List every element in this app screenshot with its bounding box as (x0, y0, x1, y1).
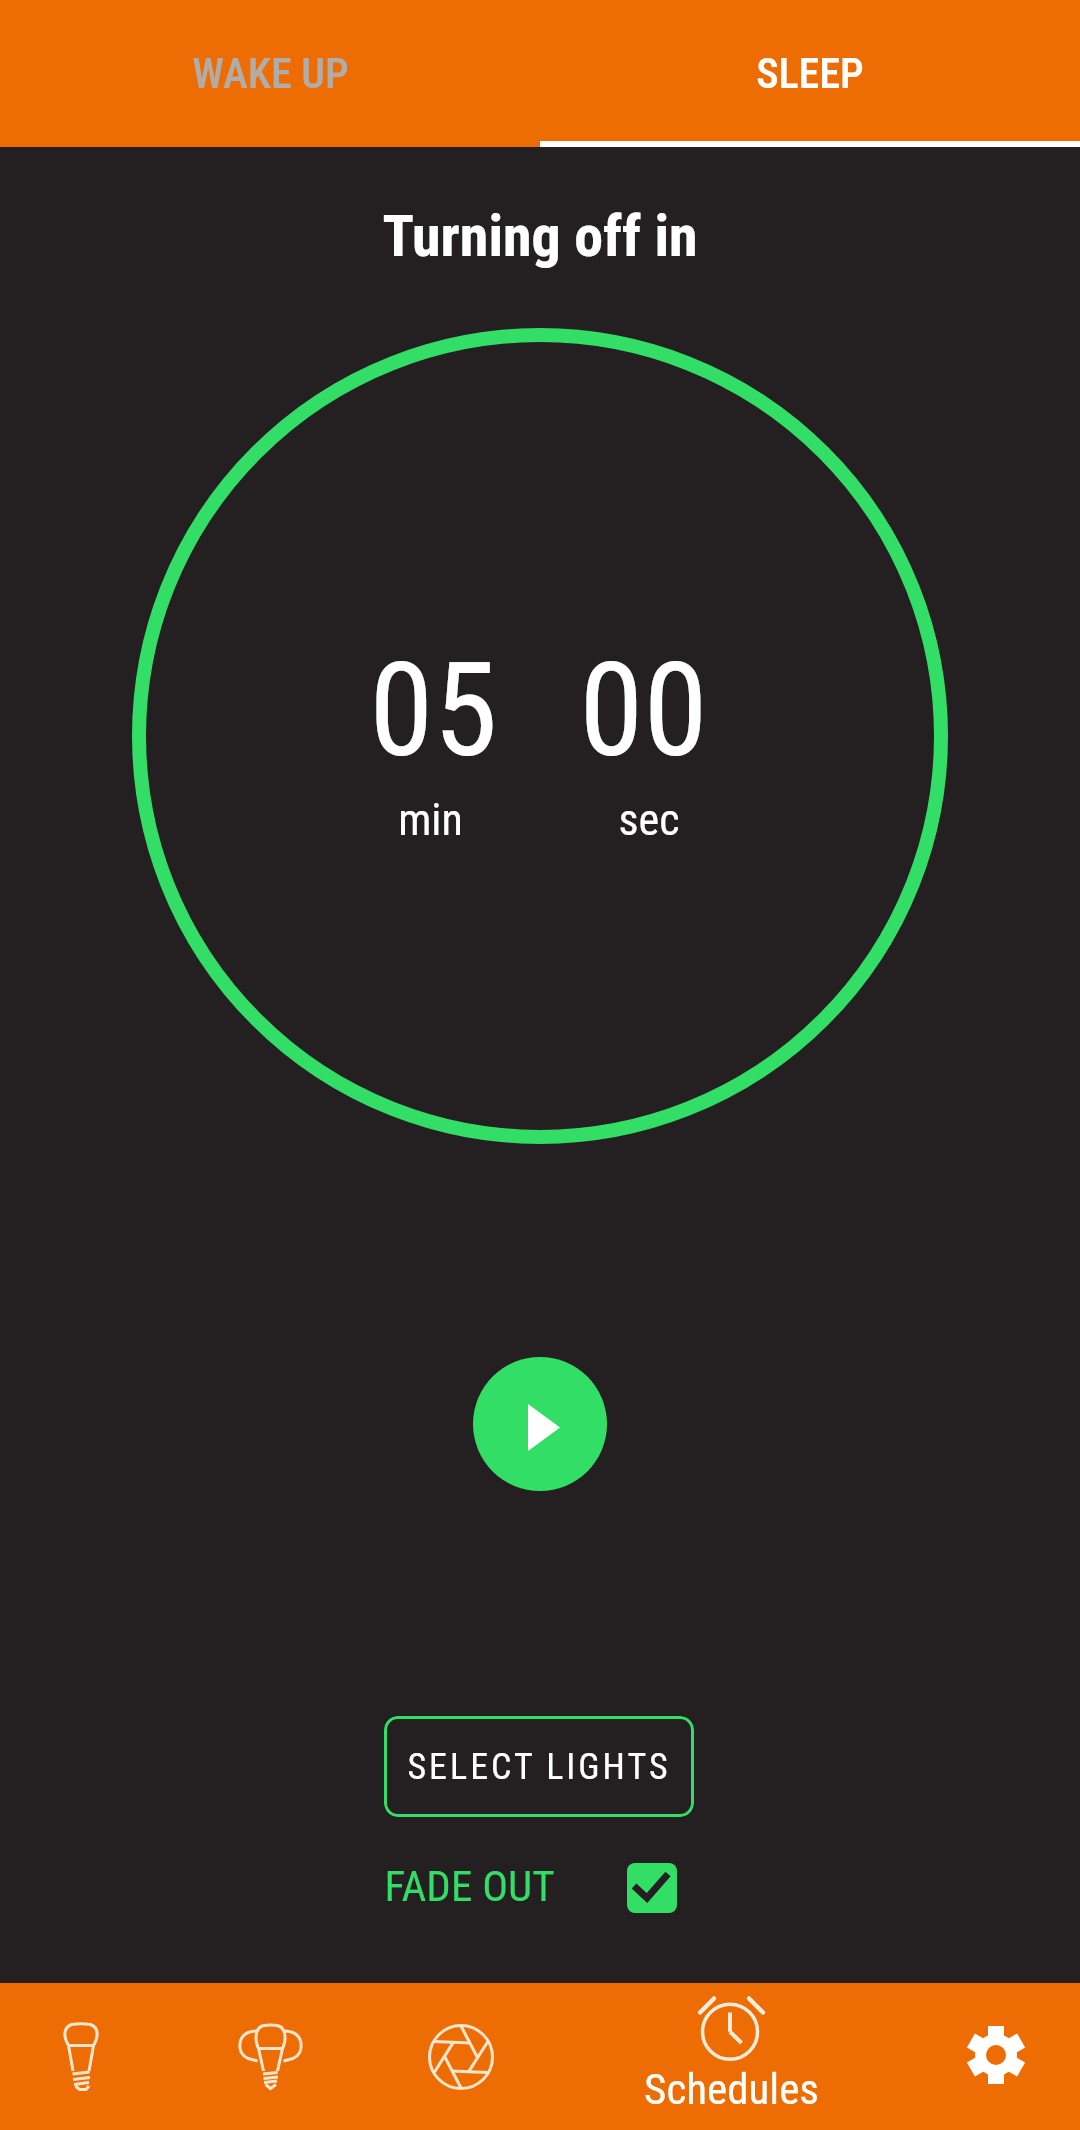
staticText: 00 (579, 634, 708, 786)
button[interactable]: SELECT LIGHTS (384, 1716, 694, 1817)
staticText: 05 (369, 634, 498, 786)
button[interactable] (0, 1983, 216, 2130)
button[interactable] (648, 1983, 864, 2130)
staticText: WAKE UP (192, 49, 349, 98)
staticText: min (398, 794, 463, 846)
staticText: SLEEP (756, 49, 864, 98)
button[interactable]: FADE OUT (330, 1840, 730, 1932)
button[interactable] (216, 1983, 432, 2130)
button[interactable] (432, 1983, 648, 2130)
staticText: sec (618, 794, 680, 846)
staticText: SELECT LIGHTS (407, 1746, 671, 1788)
staticText: Schedules (644, 2064, 819, 2114)
button[interactable]: WAKE UP (0, 0, 540, 147)
button[interactable] (473, 1357, 607, 1491)
staticText: Turning off in (382, 202, 698, 270)
button[interactable] (864, 1983, 1080, 2130)
button[interactable]: SLEEP (540, 0, 1080, 147)
staticText: FADE OUT (384, 1861, 555, 1911)
